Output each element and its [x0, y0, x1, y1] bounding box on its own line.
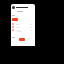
- button[interactable]: [12, 23, 34, 25]
- button[interactable]: [12, 26, 34, 28]
- button[interactable]: [19, 38, 25, 41]
- button[interactable]: [12, 29, 34, 31]
- button[interactable]: Profile: [12, 6, 15, 9]
- button[interactable]: [12, 18, 18, 21]
